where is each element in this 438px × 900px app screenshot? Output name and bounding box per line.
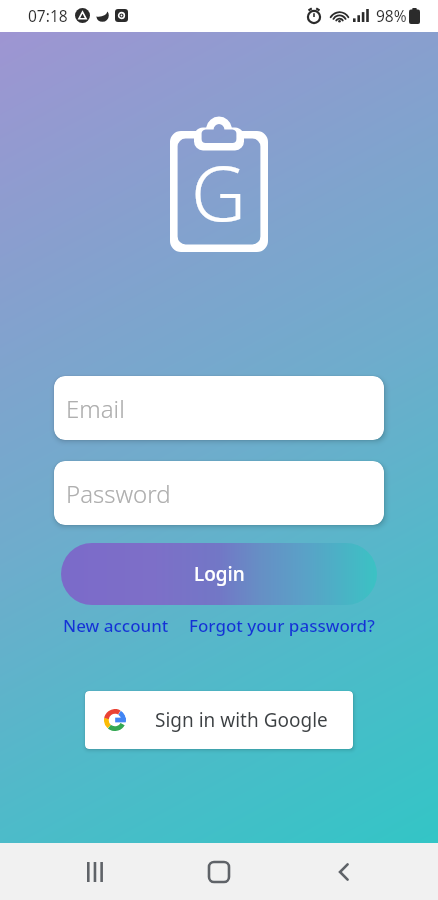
staticText: 07:18 (28, 5, 68, 26)
staticText: Login (194, 561, 245, 587)
button[interactable]: Sign in with Google (85, 691, 353, 749)
button[interactable]: Recents (65, 843, 125, 900)
staticText: Password (66, 477, 171, 510)
button[interactable]: Forgot your password? (185, 610, 379, 641)
button[interactable]: Login (61, 543, 377, 605)
staticText: New account (63, 614, 169, 637)
staticText: G (191, 140, 247, 244)
button[interactable]: Password (54, 461, 384, 525)
button[interactable]: Back (314, 843, 374, 900)
staticText: Email (66, 392, 125, 425)
staticText: 98% (376, 5, 407, 26)
button[interactable]: Email (54, 376, 384, 440)
button[interactable]: Home (189, 843, 249, 900)
button[interactable]: New account (59, 610, 173, 641)
staticText: Sign in with Google (155, 707, 328, 733)
staticText: Forgot your password? (189, 614, 375, 637)
